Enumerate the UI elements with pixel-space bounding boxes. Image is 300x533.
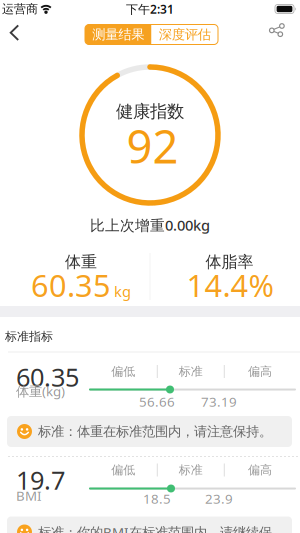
staticText: BMI (16, 487, 42, 504)
button[interactable]: 测量结果 (85, 24, 151, 44)
staticText: 19.7 (16, 463, 65, 497)
staticText: 偏低 (111, 463, 135, 477)
staticText: 偏高 (248, 463, 272, 477)
staticText: 深度评估 (159, 26, 211, 43)
staticText: 标准 (179, 364, 203, 379)
button[interactable]: 返回 (0, 17, 28, 48)
staticText: kg (114, 281, 131, 301)
staticText: 56.66 (139, 393, 175, 410)
staticText: 60.35 (16, 360, 79, 394)
staticText: 测量结果 (92, 26, 144, 43)
staticText: 偏低 (111, 364, 135, 379)
staticText: 比上次增重0.00kg (90, 215, 210, 235)
staticText: 标准：你的BMI在标准范围内，请继续保持健康的 (38, 523, 286, 533)
staticText: 60.35 (31, 265, 111, 305)
staticText: 健康指数 (116, 101, 184, 122)
staticText: 体重 (65, 252, 97, 272)
staticText: 偏高 (248, 364, 272, 379)
staticText: 标准：体重在标准范围内，请注意保持。 (38, 423, 272, 440)
staticText: 18.5 (143, 490, 171, 507)
staticText: 92 (126, 116, 178, 176)
staticText: 运营商 (2, 2, 38, 16)
button[interactable]: 深度评估 (151, 24, 218, 44)
staticText: 标准 (179, 463, 203, 477)
staticText: 体重(kg) (16, 382, 65, 400)
staticText: 体脂率 (205, 252, 253, 272)
staticText: 73.19 (201, 393, 237, 410)
staticText: 14.4% (186, 265, 273, 305)
staticText: 标准指标 (5, 329, 53, 344)
staticText: 下午2:31 (126, 1, 174, 17)
staticText: 23.9 (205, 490, 233, 507)
button[interactable]: 分享 (259, 15, 293, 45)
